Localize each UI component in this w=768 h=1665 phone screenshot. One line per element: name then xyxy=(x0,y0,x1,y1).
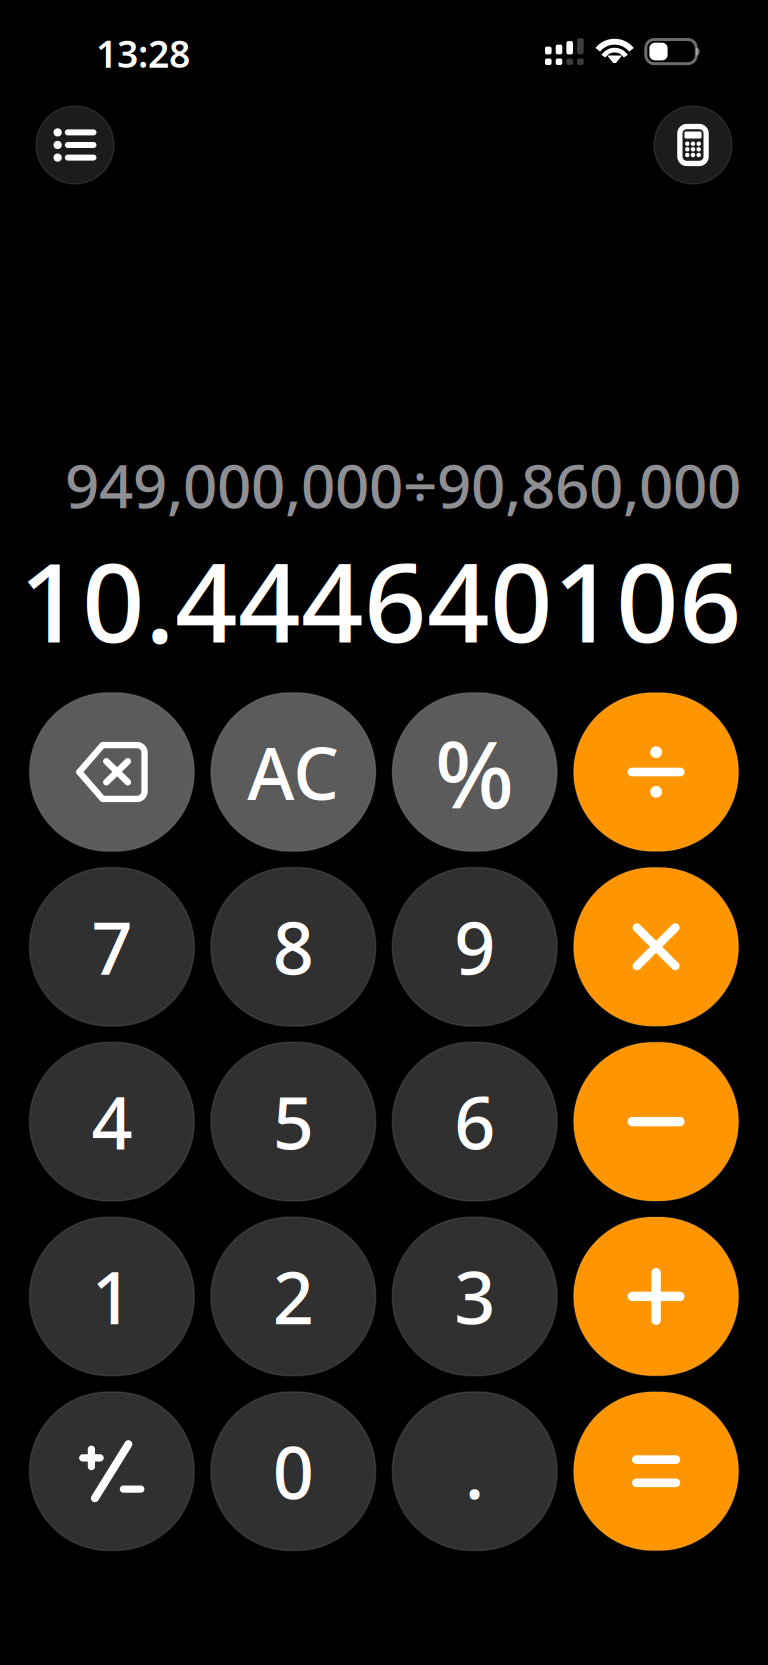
staticText: 4 xyxy=(91,1074,132,1169)
button[interactable]: Plus minus xyxy=(29,1392,194,1551)
button[interactable]: 9 xyxy=(392,867,557,1026)
button[interactable]: 6 xyxy=(392,1042,557,1201)
staticText: 1 xyxy=(91,1249,132,1344)
button[interactable]: 0 xyxy=(211,1392,376,1551)
button[interactable]: Divide xyxy=(574,693,739,851)
staticText: 5 xyxy=(273,1074,314,1169)
button[interactable]: 2 xyxy=(211,1217,376,1376)
button[interactable]: Delete xyxy=(29,693,194,851)
button[interactable]: Calculator mode xyxy=(654,106,732,184)
staticText: 2 xyxy=(273,1249,314,1344)
button[interactable]: Subtract xyxy=(574,1042,739,1201)
button[interactable]: History xyxy=(36,106,114,184)
button[interactable]: 3 xyxy=(392,1217,557,1376)
staticText: 6 xyxy=(454,1074,495,1169)
staticText: 3 xyxy=(454,1249,495,1344)
button[interactable]: 7 xyxy=(29,867,194,1026)
button[interactable]: Percent xyxy=(392,693,557,851)
staticText: 7 xyxy=(91,899,132,995)
button[interactable]: Equals xyxy=(574,1392,739,1551)
button[interactable]: Add xyxy=(574,1217,739,1376)
staticText: . xyxy=(465,1423,485,1519)
staticText: 13:28 xyxy=(96,28,190,78)
button[interactable]: 5 xyxy=(211,1042,376,1201)
button[interactable]: Decimal point xyxy=(392,1392,557,1551)
staticText: AC xyxy=(247,724,339,820)
staticText: 10.444640106 xyxy=(19,527,742,673)
staticText: 0 xyxy=(273,1423,314,1519)
staticText: 9 xyxy=(454,899,495,995)
staticText: % xyxy=(435,710,515,834)
staticText: 8 xyxy=(273,899,314,995)
button[interactable]: 1 xyxy=(29,1217,194,1376)
button[interactable]: All Clear xyxy=(211,693,376,851)
staticText: 949,000,000÷90,860,000 xyxy=(65,445,741,525)
button[interactable]: 8 xyxy=(211,867,376,1026)
button[interactable]: Multiply xyxy=(574,867,739,1026)
button[interactable]: 4 xyxy=(29,1042,194,1201)
